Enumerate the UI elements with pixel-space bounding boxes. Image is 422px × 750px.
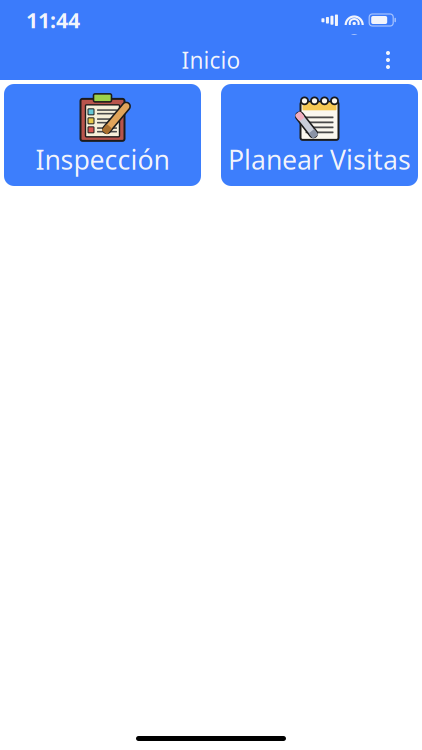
button[interactable]: Inspección [4, 84, 201, 186]
staticText: Inicio [181, 45, 240, 75]
staticText: 11:44 [26, 6, 80, 34]
button[interactable]: More options [368, 40, 408, 80]
staticText: Inspección [35, 142, 169, 177]
button[interactable]: Planear Visitas [221, 84, 418, 186]
staticText: Planear Visitas [228, 142, 411, 177]
